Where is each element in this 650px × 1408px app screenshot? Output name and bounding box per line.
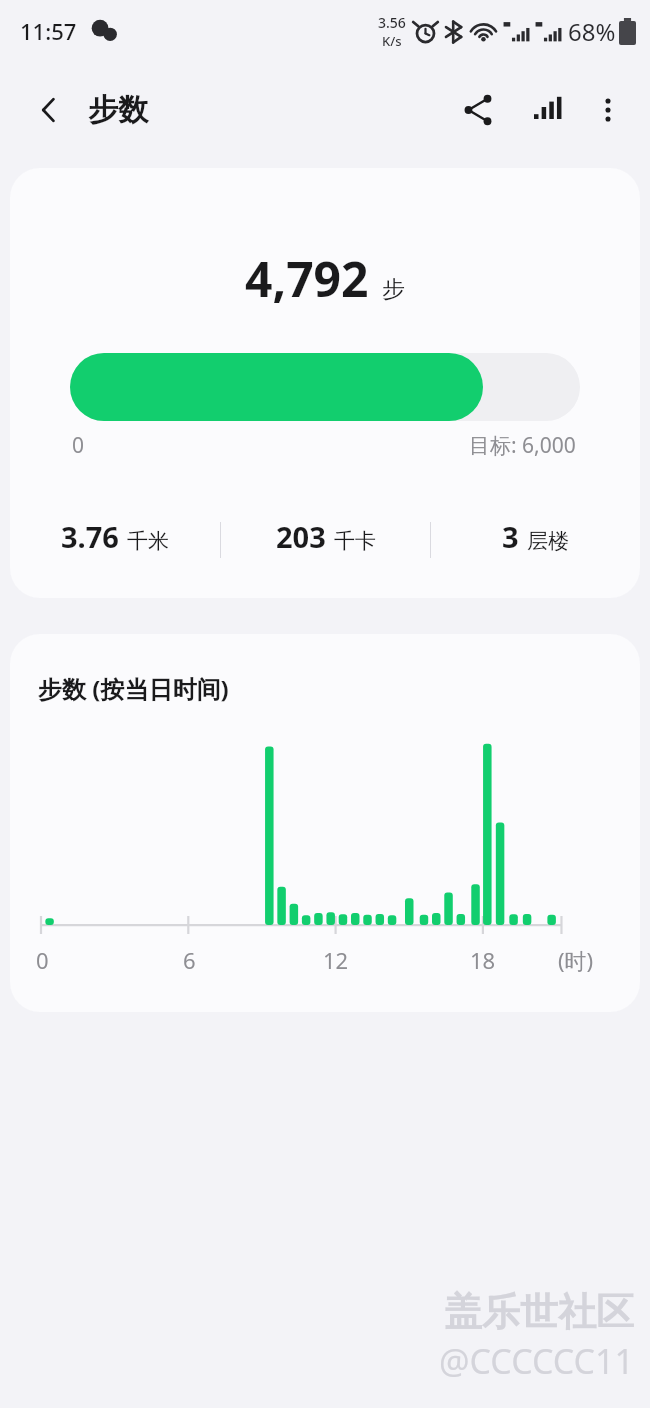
button[interactable]: More options	[580, 82, 636, 138]
staticText: 0	[72, 431, 85, 460]
button[interactable]: Back	[22, 83, 76, 137]
staticText: 3	[502, 517, 519, 556]
staticText: K/s	[382, 32, 402, 50]
staticText: 盖乐世社区	[444, 1288, 634, 1336]
staticText: 千米	[127, 528, 169, 554]
button[interactable]: 203	[221, 512, 430, 568]
button[interactable]: 3.76	[10, 512, 220, 568]
staticText: 4,792	[245, 246, 369, 311]
staticText: 12	[323, 945, 349, 975]
button[interactable]: 3	[431, 512, 640, 568]
button[interactable]: 步数 (按当日时间)	[10, 634, 640, 1012]
button[interactable]: Share	[450, 82, 506, 138]
staticText: 68%	[568, 15, 616, 48]
staticText: 步数	[88, 91, 148, 129]
staticText: 层楼	[527, 528, 569, 554]
staticText: @CCCCCC11	[439, 1338, 634, 1384]
staticText: 3.56	[378, 13, 406, 32]
staticText: 203	[276, 517, 326, 556]
staticText: 步	[382, 275, 405, 304]
staticText: 3.76	[61, 517, 119, 556]
button[interactable]: 4,792	[10, 168, 640, 598]
staticText: 11:57	[20, 16, 77, 46]
staticText: 步数 (按当日时间)	[38, 672, 229, 705]
staticText: 0	[36, 945, 49, 975]
staticText: 千卡	[334, 528, 376, 554]
staticText: 6	[183, 945, 196, 975]
staticText: 18	[470, 945, 496, 975]
staticText: (时)	[558, 945, 594, 975]
button[interactable]: Trends	[518, 82, 574, 138]
staticText: 目标: 6,000	[469, 431, 576, 460]
